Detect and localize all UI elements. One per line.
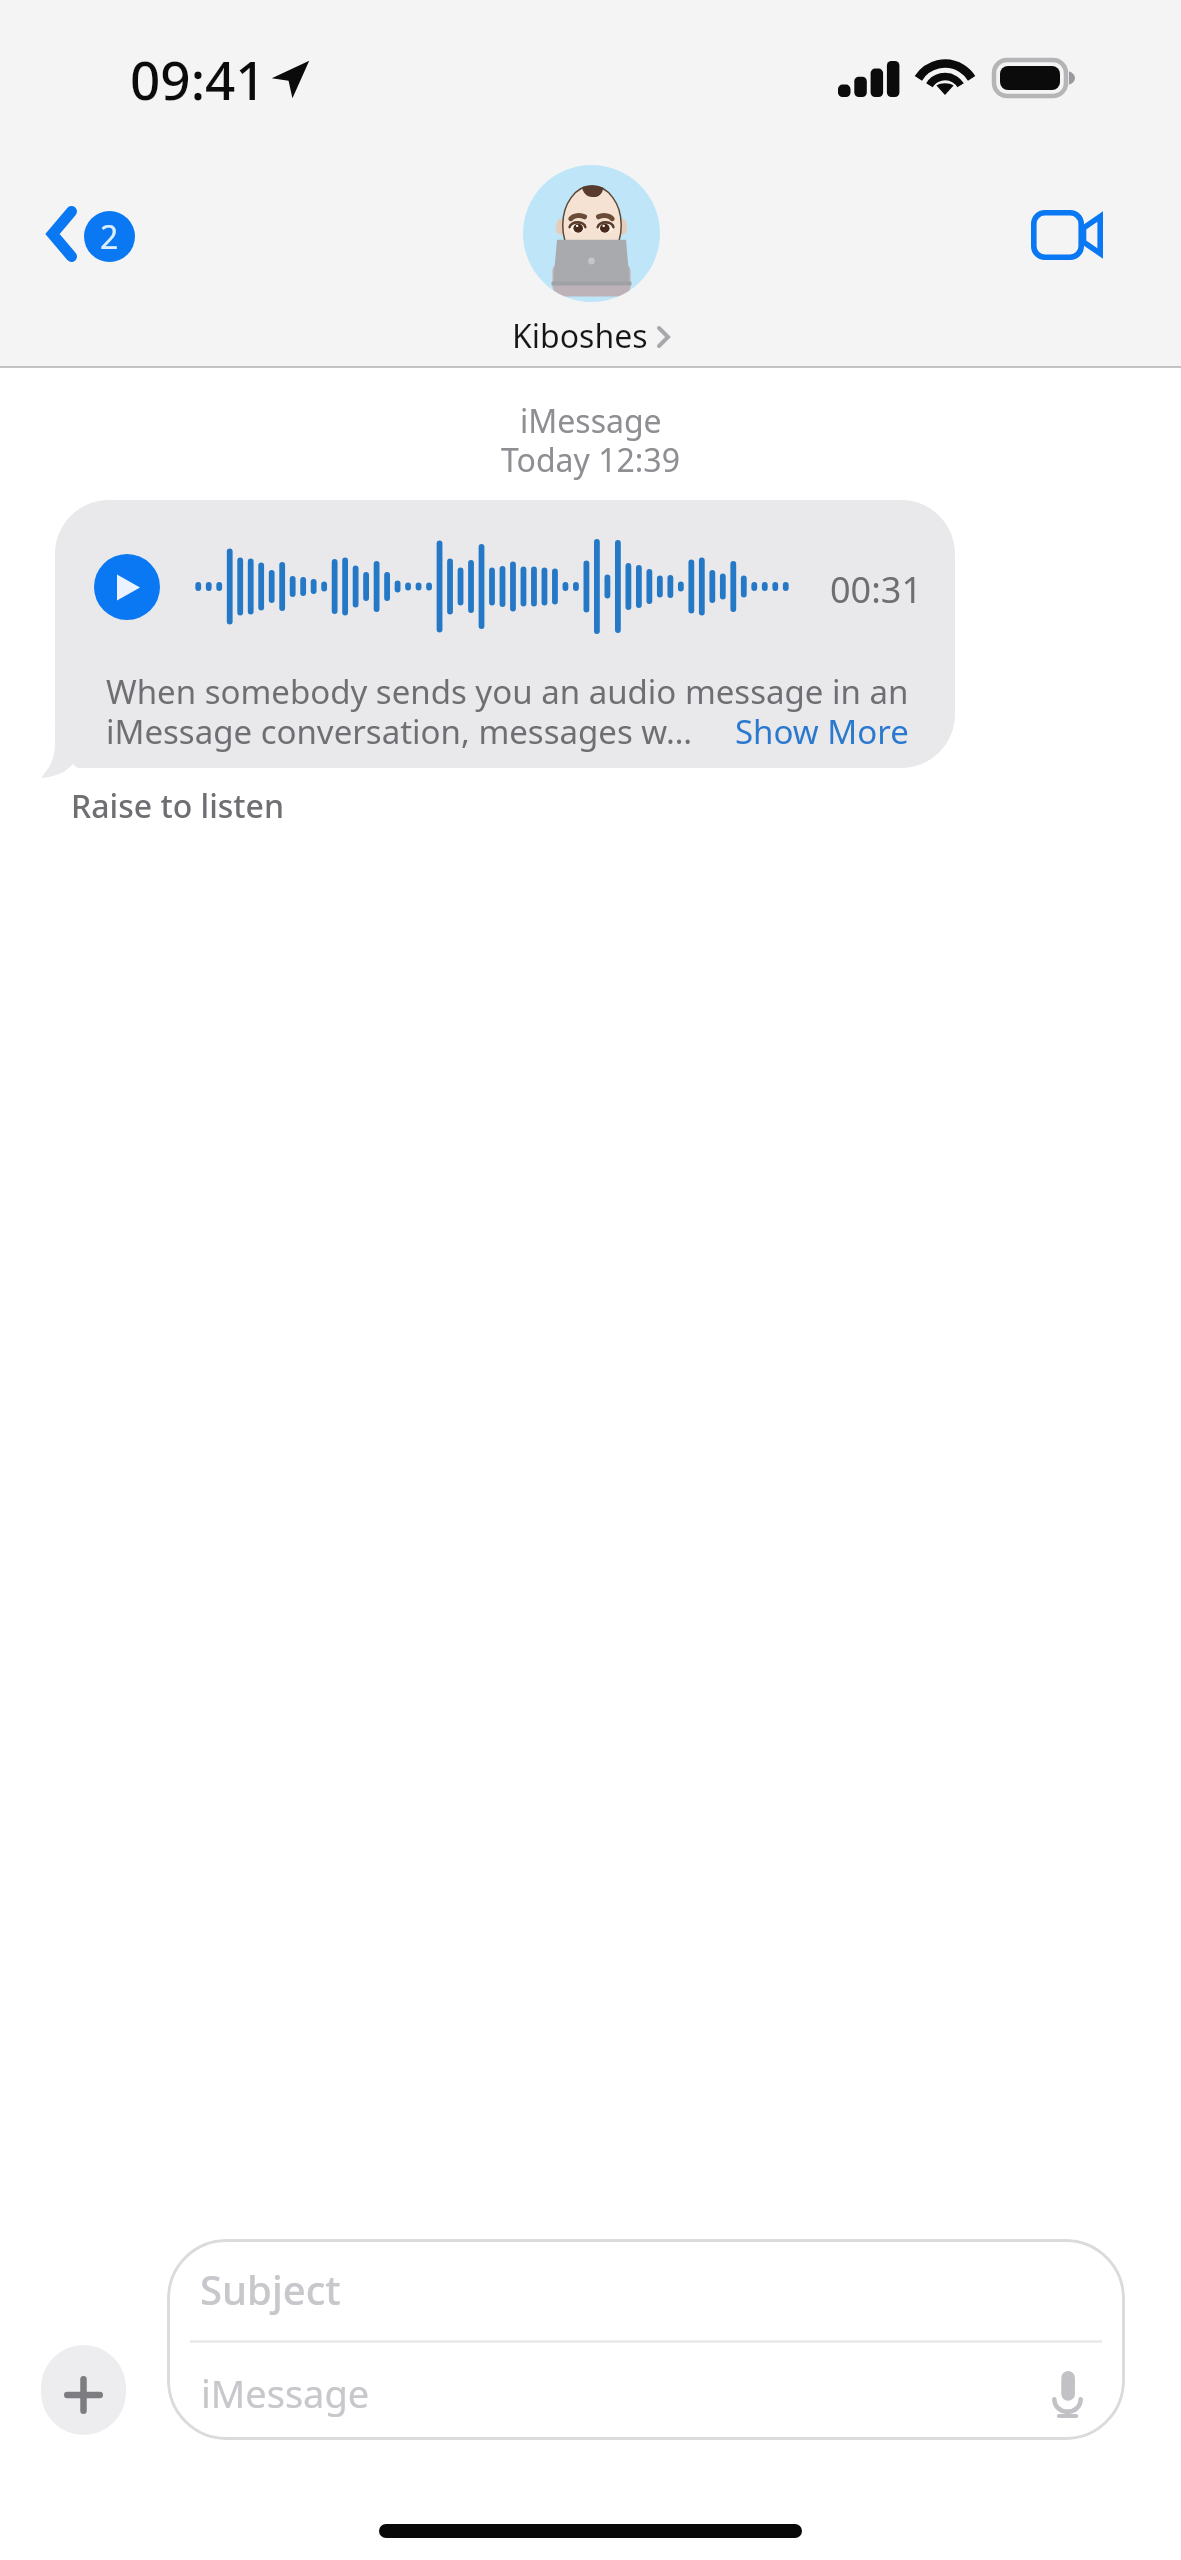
- staticText: Subject: [200, 2262, 341, 2316]
- button[interactable]: Kiboshes: [512, 165, 670, 358]
- staticText: Raise to listen: [71, 784, 285, 828]
- staticText: iMessage: [520, 399, 662, 443]
- staticText: Today 12:39: [501, 438, 680, 482]
- button[interactable]: Record audio message: [1042, 2361, 1093, 2428]
- staticText: Kiboshes: [512, 314, 648, 358]
- staticText: 00:31: [830, 565, 923, 614]
- button[interactable]: Play audio message: [94, 554, 160, 620]
- staticText: iMessage conversation, messages w…: [106, 709, 693, 754]
- staticText: When somebody sends you an audio message…: [106, 669, 909, 714]
- button[interactable]: Add attachment: [41, 2345, 126, 2435]
- button[interactable]: FaceTime video call: [1021, 200, 1113, 270]
- button[interactable]: Subject: [167, 2239, 1125, 2440]
- button[interactable]: Play audio message: [55, 500, 955, 768]
- staticText: 2: [100, 215, 119, 259]
- button[interactable]: Show More: [735, 709, 909, 754]
- button[interactable]: Back to Messages, 2 unread: [37, 196, 145, 272]
- staticText: 09:41: [130, 43, 266, 115]
- staticText: iMessage: [201, 2367, 370, 2419]
